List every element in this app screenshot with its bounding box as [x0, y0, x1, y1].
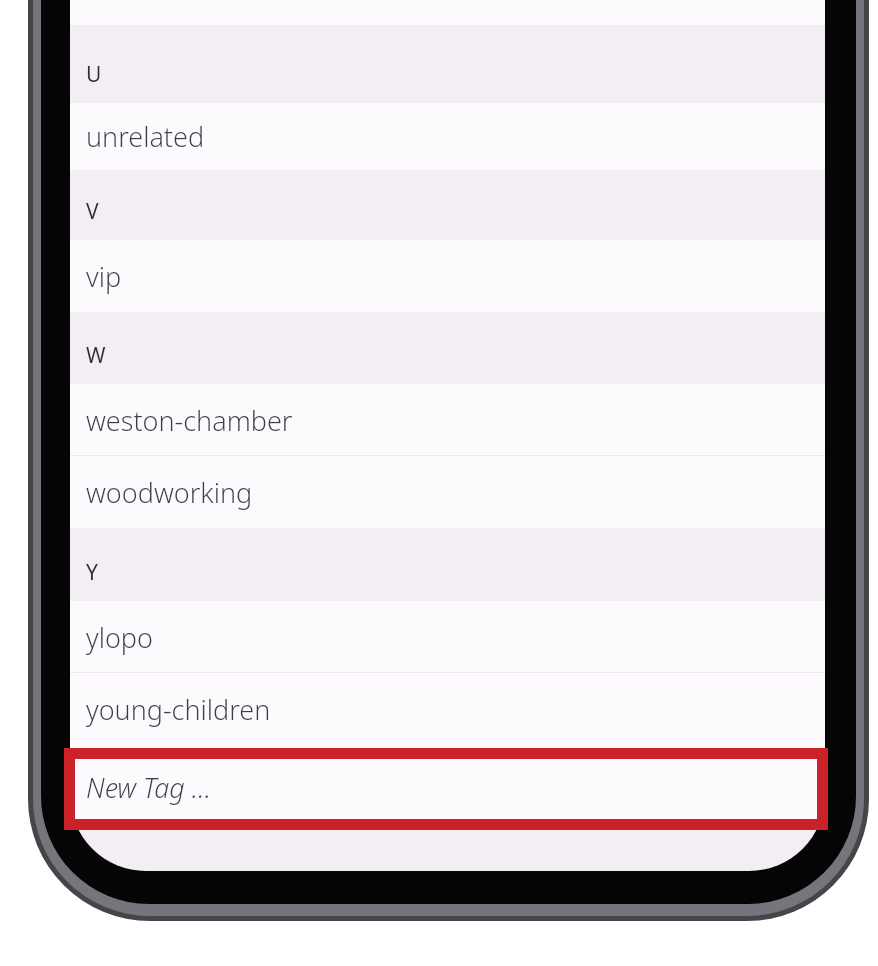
button[interactable]: ylopo [70, 601, 825, 673]
staticText: young-children [86, 691, 271, 728]
staticText: V [86, 197, 99, 226]
staticText: vip [86, 258, 122, 295]
button[interactable]: weston-chamber [70, 384, 825, 456]
staticText: W [86, 341, 106, 370]
button[interactable]: vip [70, 240, 825, 312]
staticText: woodworking [86, 474, 253, 511]
staticText: U [86, 60, 102, 89]
staticText: weston-chamber [86, 402, 293, 439]
staticText: Y [86, 558, 98, 587]
button[interactable]: woodworking [70, 456, 825, 528]
staticText: unrelated [86, 118, 205, 155]
button[interactable]: Add new tag [70, 746, 825, 829]
staticText: New Tag … [86, 769, 212, 806]
button[interactable]: young-children [70, 673, 825, 746]
button[interactable]: unrelated [70, 103, 825, 170]
staticText: ylopo [86, 619, 153, 656]
